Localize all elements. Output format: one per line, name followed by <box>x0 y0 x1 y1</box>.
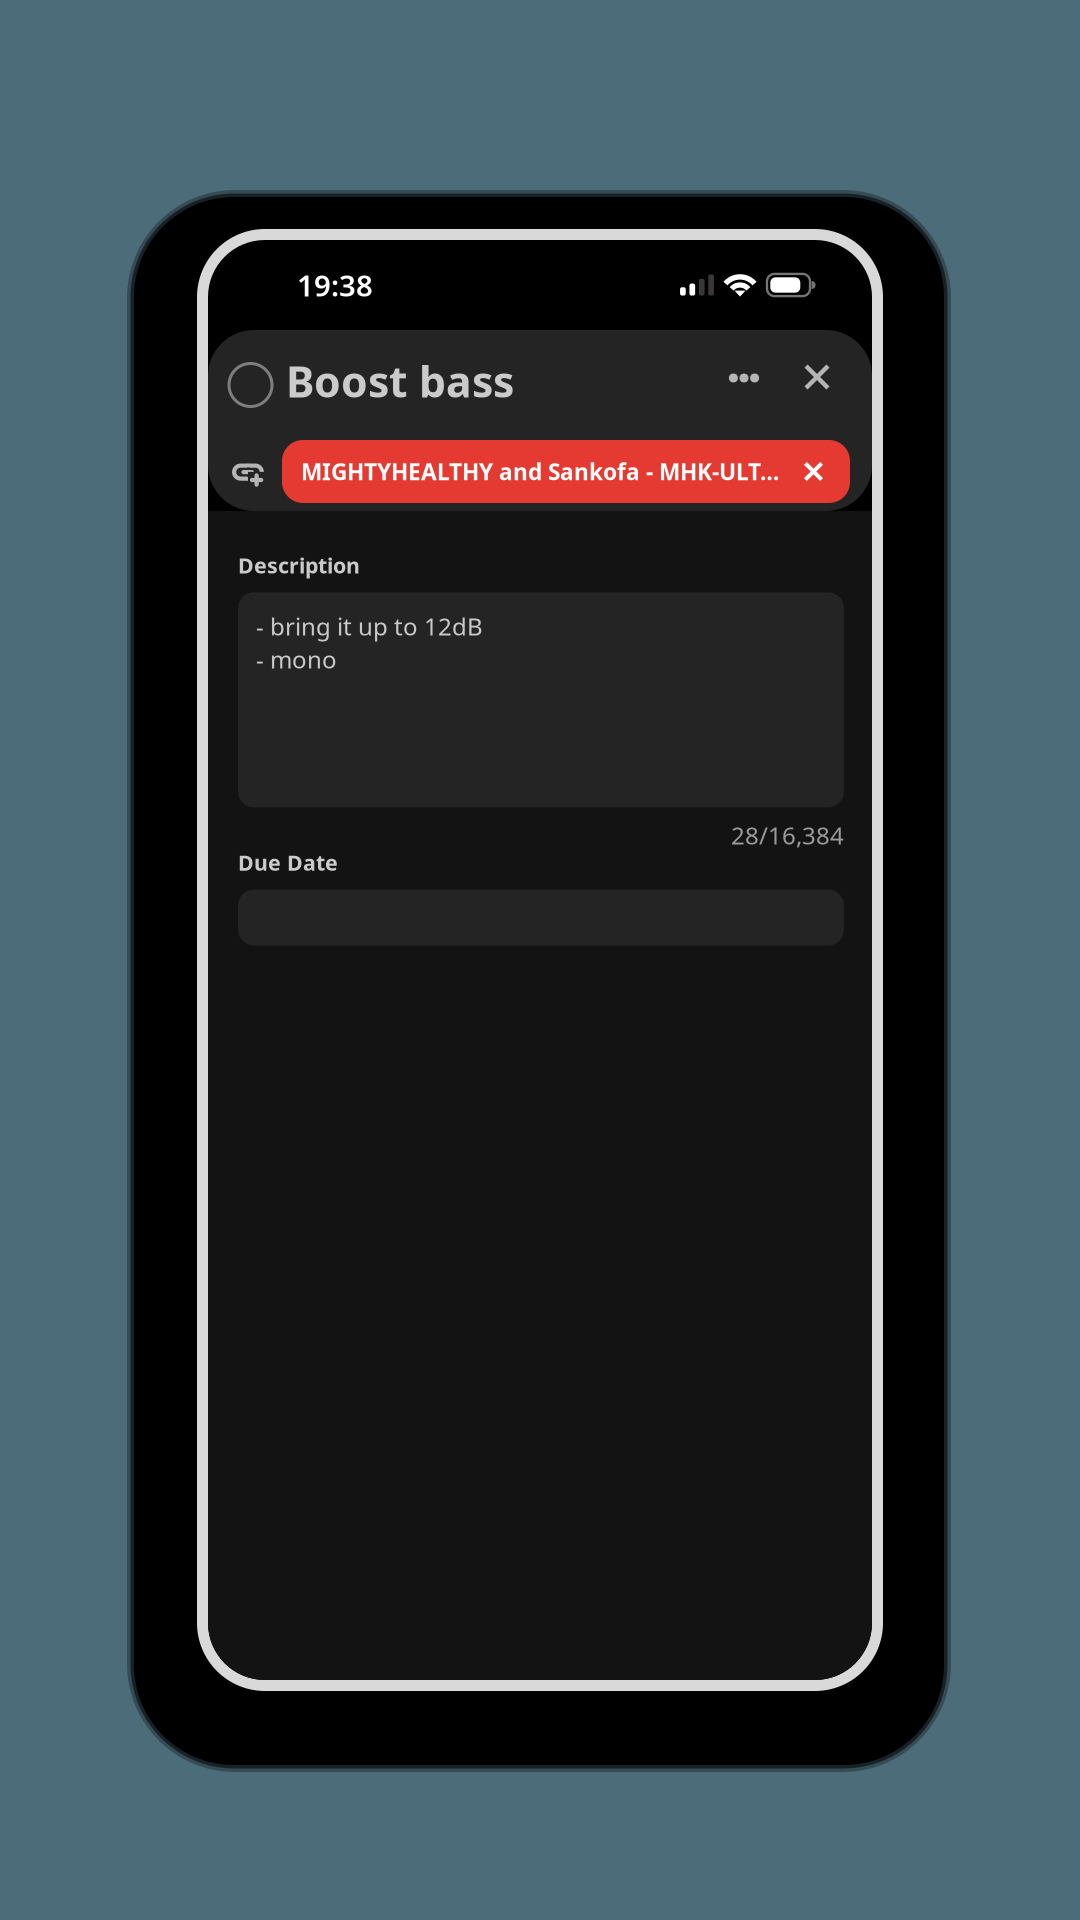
button[interactable]: Mark complete <box>218 341 283 420</box>
staticText: - bring it up to 12dB <box>256 610 483 642</box>
button[interactable]: MIGHTYHEALTHY and Sankofa - MHK-ULT… <box>282 440 850 503</box>
staticText: 19:38 <box>297 265 373 304</box>
staticText: - mono <box>256 643 337 675</box>
staticText: Due Date <box>238 848 338 876</box>
staticText: 28/16,384 <box>731 819 844 851</box>
button[interactable]: Close <box>789 358 845 404</box>
button[interactable]: More options <box>715 358 789 404</box>
staticText: Description <box>238 551 360 579</box>
staticText: MIGHTYHEALTHY and Sankofa - MHK-ULT… <box>301 456 779 486</box>
button[interactable]: Add link <box>232 446 282 496</box>
staticText: Boost bass <box>286 353 514 409</box>
